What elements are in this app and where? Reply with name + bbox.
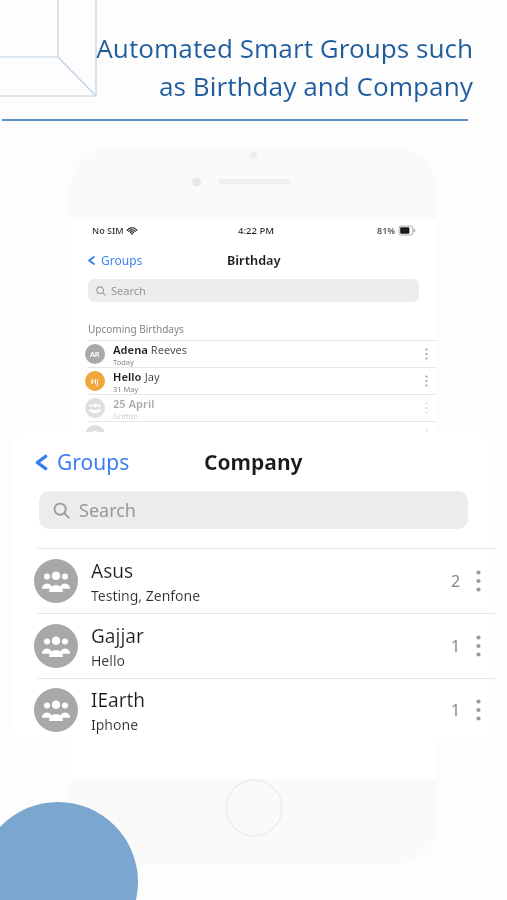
staticText: Iphone — [91, 715, 139, 734]
staticText: No SIM — [92, 224, 124, 236]
staticText: as Birthday and Company — [30, 68, 473, 103]
staticText: Search — [111, 283, 146, 298]
staticText: Reeves — [148, 342, 187, 357]
staticText: Today — [113, 357, 134, 367]
staticText: Groups — [101, 252, 143, 268]
button[interactable]: More options — [415, 341, 437, 367]
staticText: HJ — [91, 376, 99, 386]
staticText: 2 — [451, 570, 461, 592]
button[interactable]: Groups — [86, 252, 143, 268]
button[interactable]: 25 April — [70, 395, 437, 421]
button[interactable]: Groups — [32, 448, 130, 477]
button[interactable]: Gajjar — [12, 614, 495, 678]
button[interactable]: HJ — [70, 368, 437, 394]
button[interactable]: Asus — [12, 549, 495, 613]
button[interactable]: Search — [39, 491, 468, 529]
staticText: Testing, Zenfone — [91, 586, 201, 605]
staticText: Groups — [57, 448, 130, 477]
staticText: IEarth — [91, 687, 146, 713]
staticText: Search — [79, 498, 136, 523]
button[interactable]: AR — [70, 341, 437, 367]
button[interactable]: IEarth — [12, 679, 495, 741]
staticText: AR — [90, 349, 100, 359]
button[interactable]: More options — [415, 395, 437, 421]
staticText: 81% — [377, 224, 396, 236]
staticText: Gajjar — [91, 623, 144, 649]
button[interactable]: 03 May — [70, 422, 437, 448]
staticText: Jay — [142, 369, 160, 384]
staticText: 31 May — [113, 384, 139, 394]
staticText: Birthday — [227, 252, 281, 269]
staticText: 25 April — [113, 396, 155, 411]
staticText: 4:22 PM — [238, 224, 275, 237]
button[interactable]: More options — [461, 549, 495, 613]
button[interactable]: More options — [415, 368, 437, 394]
staticText: Automated Smart Groups such — [30, 30, 473, 65]
button[interactable]: More options — [461, 614, 495, 678]
staticText: Hello — [91, 651, 125, 670]
button[interactable]: Search — [88, 279, 419, 302]
staticText: Company — [204, 448, 303, 477]
staticText: 1 — [451, 699, 461, 721]
staticText: Griffith — [113, 411, 138, 421]
staticText: Asus — [91, 558, 134, 584]
staticText: Adena — [113, 342, 148, 357]
staticText: Upcoming Birthdays — [88, 322, 184, 336]
button[interactable]: More options — [461, 679, 495, 741]
staticText: 1 — [451, 635, 461, 657]
staticText: Hello — [113, 369, 142, 384]
